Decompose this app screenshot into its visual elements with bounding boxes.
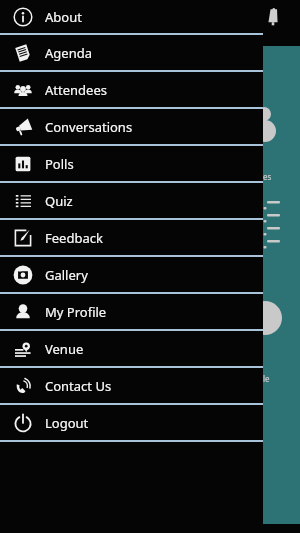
button[interactable]: Attendees <box>0 72 263 107</box>
button[interactable]: About <box>0 0 263 33</box>
staticText: Agenda <box>45 44 92 62</box>
button[interactable]: Venue <box>0 331 263 366</box>
button[interactable]: Gallery <box>0 257 263 292</box>
staticText: Contact Us <box>45 377 112 395</box>
staticText: Logout <box>45 414 89 432</box>
button[interactable]: My Profile <box>0 294 263 329</box>
staticText: Feedback <box>45 229 103 247</box>
staticText: le <box>263 373 270 384</box>
staticText: Quiz <box>45 192 73 210</box>
button[interactable]: Agenda <box>0 35 263 70</box>
staticText: Venue <box>45 340 84 358</box>
staticText: Gallery <box>45 266 88 284</box>
staticText: Attendees <box>45 81 107 99</box>
staticText: es <box>263 171 272 182</box>
button[interactable]: Contact Us <box>0 368 263 403</box>
staticText: My Profile <box>45 303 107 321</box>
button[interactable]: Polls <box>0 146 263 181</box>
button[interactable]: Feedback <box>0 220 263 255</box>
button[interactable]: Logout <box>0 405 263 440</box>
staticText: Polls <box>45 155 74 173</box>
staticText: Conversations <box>45 118 133 136</box>
button[interactable]: Notifications <box>260 4 286 30</box>
button[interactable]: Quiz <box>0 183 263 218</box>
staticText: About <box>45 8 82 26</box>
button[interactable]: Conversations <box>0 109 263 144</box>
